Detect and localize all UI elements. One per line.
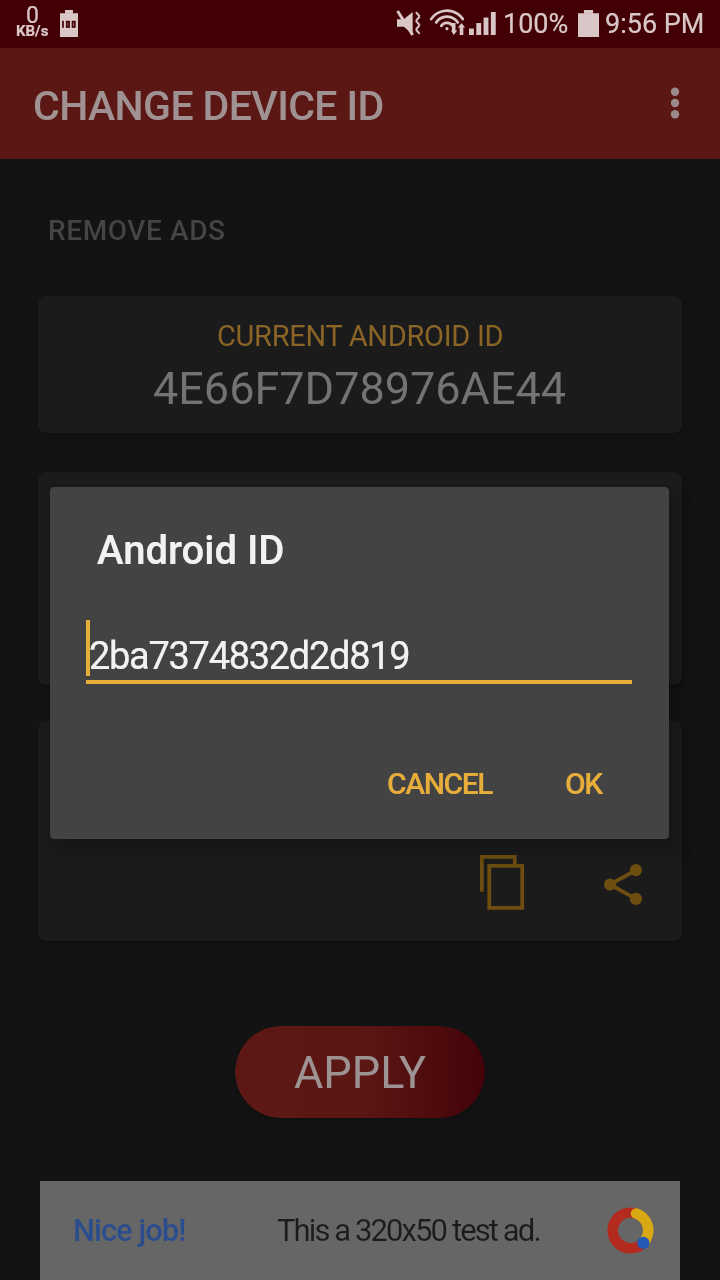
staticText: OK [565,766,602,801]
staticText: 2ba7374832d2d819 [89,634,410,679]
button[interactable]: CANCEL [369,750,511,817]
staticText: APPLY [294,1046,427,1099]
staticText: 4E66F7D78976AE44 [153,362,567,415]
staticText: REMOVE ADS [48,214,226,247]
staticText: Nice job! [73,1212,186,1248]
staticText: CANCEL [387,766,493,801]
button[interactable]: REMOVE ADS [24,191,248,267]
button[interactable]: Nice job! [40,1181,680,1280]
staticText: CURRENT ANDROID ID [217,319,504,353]
staticText: Android ID [97,527,285,574]
staticText: 9:56 PM [605,8,705,40]
button[interactable]: Copy [473,853,531,911]
button[interactable]: CURRENT ANDROID ID [38,296,682,433]
button[interactable]: OK [547,750,620,817]
button[interactable]: APPLY [235,1026,485,1118]
button[interactable]: More options [639,67,711,139]
button[interactable] [38,472,682,685]
staticText: This a 320x50 test ad. [277,1212,540,1248]
staticText: CHANGE DEVICE ID [33,82,384,130]
staticText: 100% [503,8,569,40]
staticText: KB/s [16,22,49,40]
staticText: 0 [26,2,39,29]
button[interactable]: Share [594,855,652,913]
